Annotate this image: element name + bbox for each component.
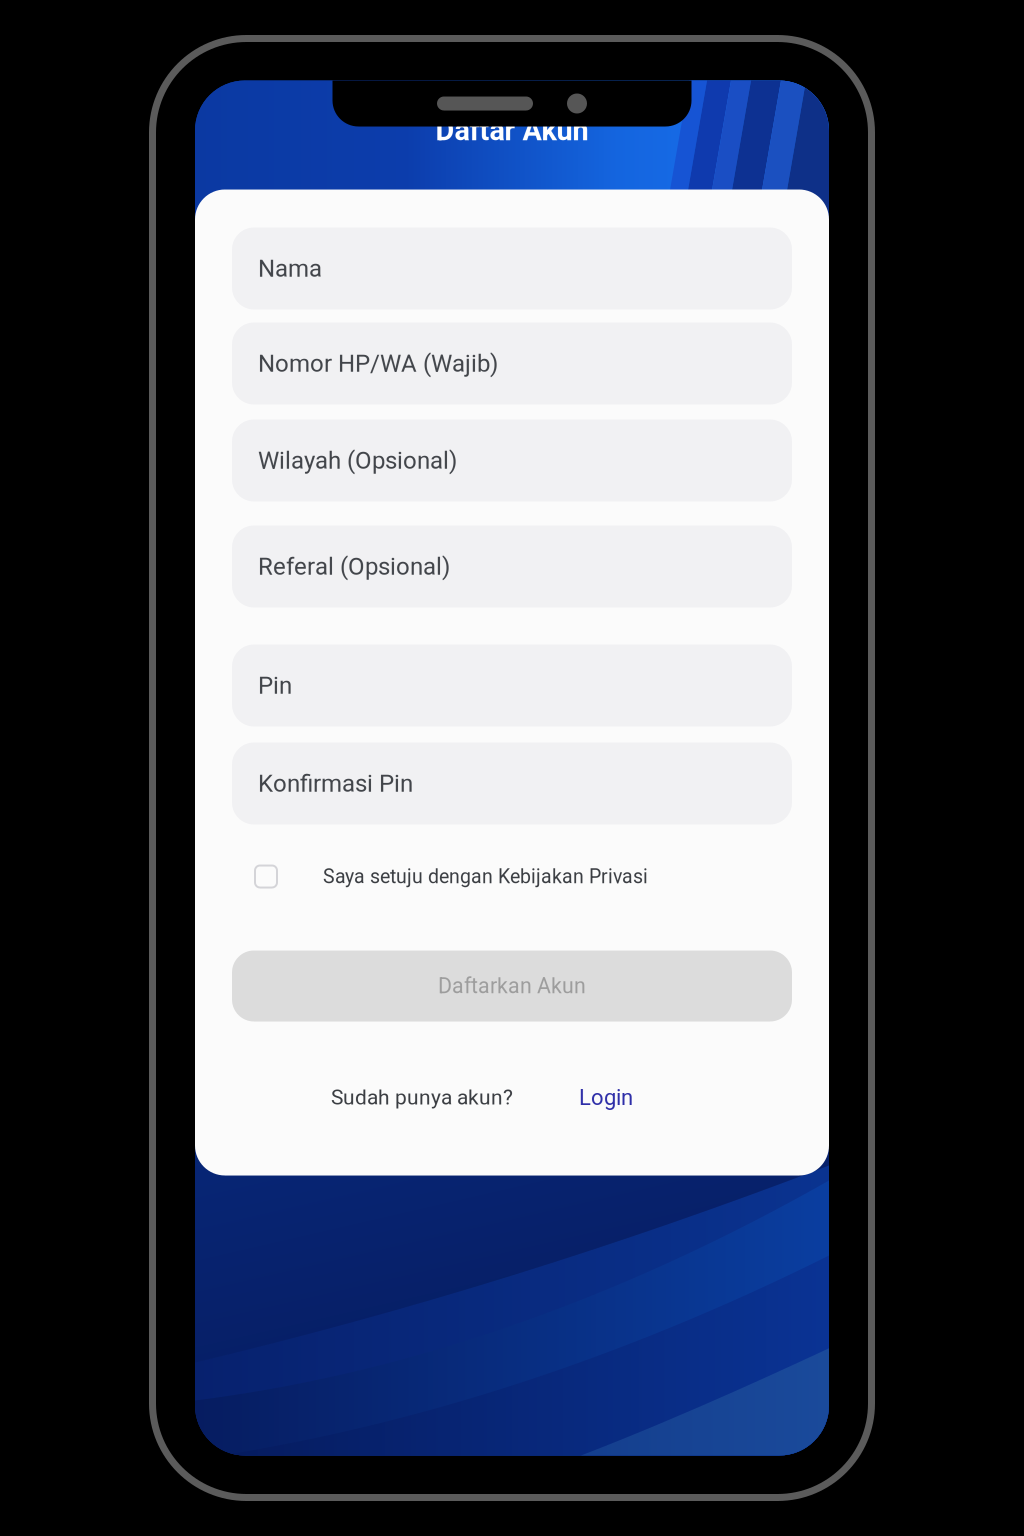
button[interactable]: Nomor HP/WA (Wajib) xyxy=(232,322,792,404)
button[interactable]: Referal (Opsional) xyxy=(232,525,792,607)
staticText: Nomor HP/WA (Wajib) xyxy=(258,349,498,377)
staticText: Konfirmasi Pin xyxy=(258,769,413,797)
staticText: Saya setuju dengan Kebijakan Privasi xyxy=(323,865,648,888)
staticText: Sudah punya akun? xyxy=(331,1085,513,1110)
staticText: Daftarkan Akun xyxy=(438,973,586,998)
button[interactable]: Saya setuju dengan Kebijakan Privasi xyxy=(232,854,792,898)
button[interactable]: Daftarkan Akun xyxy=(232,950,792,1021)
button[interactable]: Login xyxy=(513,1078,633,1116)
button[interactable]: Pin xyxy=(232,644,792,726)
staticText: Nama xyxy=(258,254,322,282)
staticText: Login xyxy=(579,1084,633,1110)
staticText: Daftar Akun xyxy=(435,114,588,147)
staticText: Referal (Opsional) xyxy=(258,552,450,580)
button[interactable]: Konfirmasi Pin xyxy=(232,742,792,824)
button[interactable]: Wilayah (Opsional) xyxy=(232,419,792,501)
staticText: Wilayah (Opsional) xyxy=(258,446,457,474)
button[interactable]: Nama xyxy=(232,227,792,309)
staticText: Pin xyxy=(258,671,292,699)
